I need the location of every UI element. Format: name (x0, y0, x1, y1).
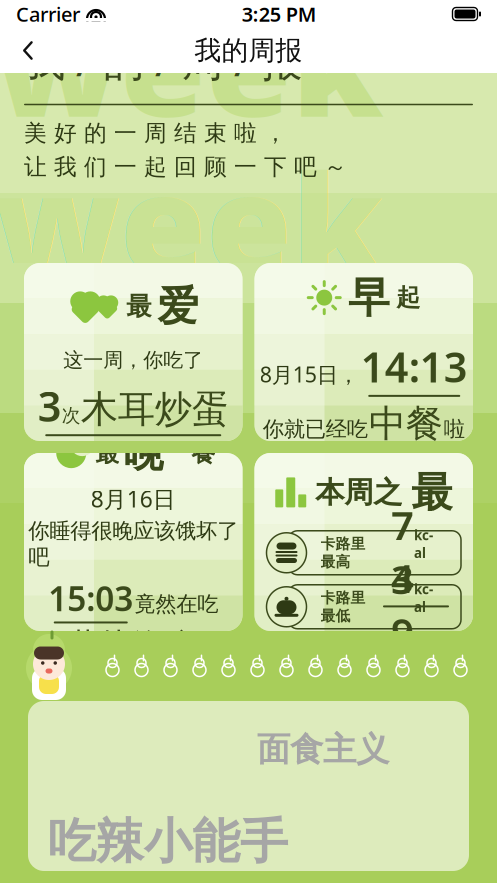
staticText: 竟然在吃 (134, 591, 218, 617)
staticText: 8月16日 (91, 484, 176, 514)
staticText: 最 (95, 438, 119, 468)
staticText: 晚 (123, 429, 163, 478)
staticText: 起 (396, 283, 420, 312)
button[interactable]: 返回 (6, 28, 50, 72)
staticText: kcal (414, 580, 433, 616)
staticText: 木耳炒蛋 (81, 386, 229, 432)
staticText: 美 好 的 一 周 结 束 啦 ， (24, 119, 287, 147)
staticText: Carrier (16, 1, 80, 27)
staticText: 葱烧海参 (67, 625, 199, 666)
staticText: 卡路里最低 (320, 589, 365, 625)
staticText: 面食主义 (257, 729, 389, 770)
staticText: 15:03 (48, 576, 133, 620)
staticText: 次 (62, 404, 81, 427)
staticText: 让 我 们 一 起 回 顾 一 下 吧 ～ (24, 153, 347, 181)
staticText: week (0, 129, 383, 313)
staticText: 3:25 PM (242, 1, 317, 27)
staticText: 我的周报 (194, 34, 302, 67)
staticText: 74 (391, 498, 414, 604)
staticText: 一餐 (167, 438, 215, 468)
staticText: 3 (38, 378, 62, 433)
staticText: 39 (391, 552, 414, 658)
staticText: 最 (126, 291, 151, 322)
staticText: 我 / 的 / 周 / 报 (24, 33, 302, 88)
staticText: 吃辣小能手 (48, 812, 288, 871)
staticText: kcal (414, 526, 433, 562)
staticText: 早 (348, 272, 389, 323)
staticText: 中餐 (369, 401, 443, 447)
staticText: 你就已经吃 (263, 416, 368, 442)
staticText: z (80, 433, 89, 456)
staticText: 卡路里最高 (320, 535, 365, 571)
staticText: 爱 (157, 281, 198, 332)
staticText: 这一周，你吃了 (63, 348, 203, 372)
staticText: 最 (411, 467, 452, 518)
staticText: week (0, 0, 383, 155)
staticText: 你睡得很晚应该饿坏了吧 (28, 518, 238, 570)
staticText: 啦 (444, 416, 465, 442)
staticText: 14:13 (361, 339, 468, 394)
staticText: 8月15日， (260, 360, 359, 388)
staticText: 本周之 (315, 474, 402, 510)
